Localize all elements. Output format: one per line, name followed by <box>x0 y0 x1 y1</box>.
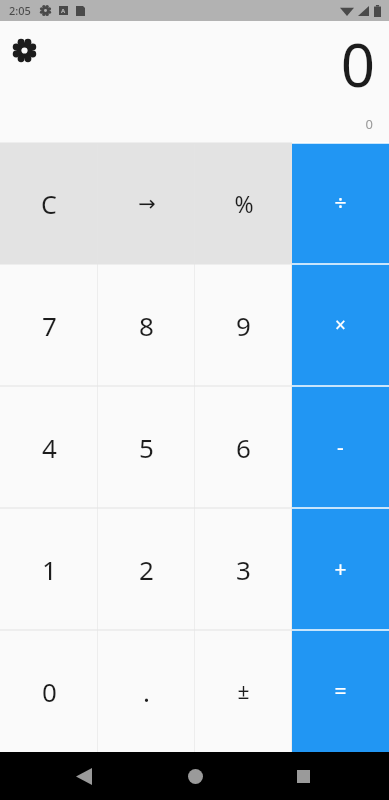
button[interactable]: 1 <box>0 508 98 630</box>
button[interactable]: 5 <box>98 386 195 508</box>
button[interactable]: 2 <box>98 508 195 630</box>
button[interactable]: C <box>0 143 98 264</box>
staticText: ÷ <box>334 189 347 218</box>
staticText: = <box>334 677 347 706</box>
button[interactable]: + <box>292 508 389 630</box>
staticText: 4 <box>42 430 57 465</box>
staticText: 6 <box>236 430 251 465</box>
staticText: 5 <box>139 430 154 465</box>
button[interactable]: % <box>195 143 292 264</box>
button[interactable]: 7 <box>0 264 98 386</box>
button[interactable]: Recents <box>283 756 323 796</box>
button[interactable]: 8 <box>98 264 195 386</box>
staticText: → <box>138 192 156 216</box>
button[interactable]: Settings <box>6 32 42 68</box>
staticText: A <box>61 7 66 15</box>
button[interactable]: ÷ <box>292 143 389 264</box>
staticText: C <box>41 187 57 221</box>
button[interactable]: Home <box>175 756 215 796</box>
button[interactable]: 0 <box>0 630 98 752</box>
button[interactable]: 4 <box>0 386 98 508</box>
button[interactable]: = <box>292 630 389 752</box>
button[interactable]: 9 <box>195 264 292 386</box>
staticText: . <box>143 674 150 709</box>
staticText: % <box>234 188 254 219</box>
staticText: 1 <box>42 552 57 587</box>
staticText: 0 <box>365 115 373 133</box>
staticText: 2 <box>139 552 154 587</box>
staticText: 7 <box>42 308 57 343</box>
staticText: + <box>334 555 347 584</box>
button[interactable]: Back <box>64 756 104 796</box>
staticText: 0 <box>42 674 57 709</box>
staticText: 2:05 <box>9 3 31 18</box>
button[interactable]: . <box>98 630 195 752</box>
button[interactable]: 6 <box>195 386 292 508</box>
staticText: 0 <box>340 23 375 105</box>
button[interactable]: 3 <box>195 508 292 630</box>
staticText: 9 <box>236 308 251 343</box>
staticText: 8 <box>139 308 154 343</box>
staticText: ± <box>237 677 250 706</box>
staticText: × <box>335 312 346 338</box>
button[interactable]: × <box>292 264 389 386</box>
button[interactable]: - <box>292 386 389 508</box>
staticText: - <box>337 433 344 462</box>
button[interactable]: → <box>98 143 195 264</box>
staticText: 3 <box>236 552 251 587</box>
button[interactable]: ± <box>195 630 292 752</box>
